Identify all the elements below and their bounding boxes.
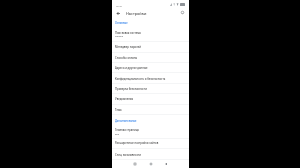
button[interactable]: Способы оплаты [112, 53, 189, 63]
staticText: Уведомления [115, 97, 134, 101]
staticText: Тема [115, 108, 122, 112]
button[interactable]: Главная страница [112, 125, 189, 139]
button[interactable]: Recent apps [131, 160, 139, 168]
button[interactable]: Поисковая система [112, 28, 189, 41]
staticText: Google [115, 34, 123, 37]
button[interactable]: Back [114, 9, 123, 18]
staticText: Менеджер паролей [115, 45, 142, 49]
staticText: Адреса и другие данные [115, 66, 148, 70]
button[interactable]: Help [178, 8, 187, 17]
staticText: Проверка безопасности [115, 87, 147, 91]
button[interactable]: Back [162, 160, 170, 168]
staticText: Дополнительные [115, 119, 137, 122]
staticText: Главная страница [115, 128, 139, 132]
button[interactable]: Проверка безопасности [112, 84, 189, 94]
button[interactable]: Менеджер паролей [112, 42, 189, 52]
staticText: Спец. возможности [115, 153, 141, 157]
staticText: Расширенные настройки сайтов [115, 141, 159, 145]
staticText: Настройки [126, 11, 147, 16]
button[interactable]: Тема [112, 105, 189, 115]
button[interactable]: Конфиденциальность и безопасность [112, 74, 189, 84]
staticText: Конфиденциальность и безопасность [115, 77, 166, 81]
staticText: 16:41 [116, 4, 123, 7]
button[interactable]: Расширенные настройки сайтов [112, 138, 189, 148]
staticText: Способы оплаты [115, 56, 138, 60]
button[interactable]: Уведомления [112, 94, 189, 104]
staticText: Поисковая система [115, 31, 141, 35]
button[interactable]: Адреса и другие данные [112, 63, 189, 73]
staticText: Основные [115, 21, 128, 24]
staticText: Вкл [115, 132, 120, 135]
button[interactable]: Home [147, 160, 155, 168]
button[interactable]: Спец. возможности [112, 150, 189, 160]
